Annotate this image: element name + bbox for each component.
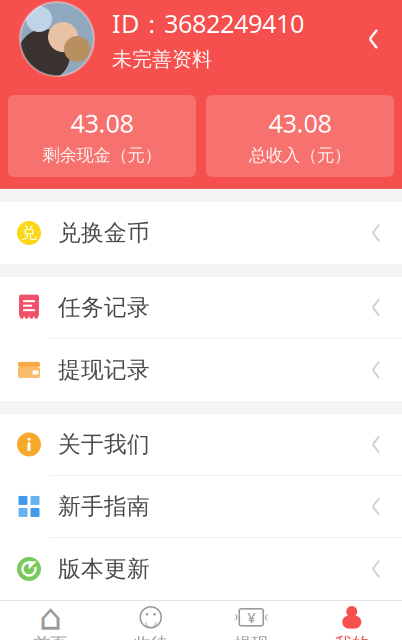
- staticText: ◤: [28, 558, 36, 570]
- staticText: 关于我们: [58, 430, 150, 458]
- button[interactable]: 关于我们: [0, 414, 402, 476]
- button[interactable]: ¥: [201, 599, 301, 640]
- staticText: 未完善资料: [112, 47, 212, 72]
- staticText: 提现: [234, 633, 268, 640]
- staticText: 首页: [33, 633, 67, 640]
- button[interactable]: 新手指南: [0, 476, 402, 538]
- button[interactable]: 我的: [301, 599, 402, 640]
- staticText: ◡: [145, 612, 156, 629]
- staticText: 剩余现金（元）: [42, 145, 161, 166]
- button[interactable]: ID：3682249410: [0, 0, 402, 95]
- staticText: 兑: [21, 223, 37, 243]
- staticText: 兑换金币: [58, 219, 150, 247]
- staticText: 新手指南: [58, 492, 150, 520]
- button[interactable]: 提现记录: [0, 339, 402, 401]
- staticText: 43.08: [70, 106, 133, 140]
- staticText: 我的: [335, 633, 369, 640]
- button[interactable]: ⌂: [0, 599, 100, 640]
- button[interactable]: ◤: [0, 538, 402, 600]
- button[interactable]: 兑: [0, 202, 402, 264]
- button[interactable]: 任务记录: [0, 277, 402, 339]
- staticText: 收徒: [134, 633, 168, 640]
- staticText: 提现记录: [58, 356, 150, 384]
- staticText: ID：3682249410: [112, 6, 304, 40]
- staticText: 版本更新: [58, 555, 150, 583]
- staticText: 总收入（元）: [249, 145, 351, 166]
- staticText: 任务记录: [58, 293, 150, 321]
- staticText: ⌂: [39, 597, 62, 638]
- staticText: ¥: [247, 608, 255, 627]
- staticText: 43.08: [268, 106, 331, 140]
- button[interactable]: ◡: [100, 599, 201, 640]
